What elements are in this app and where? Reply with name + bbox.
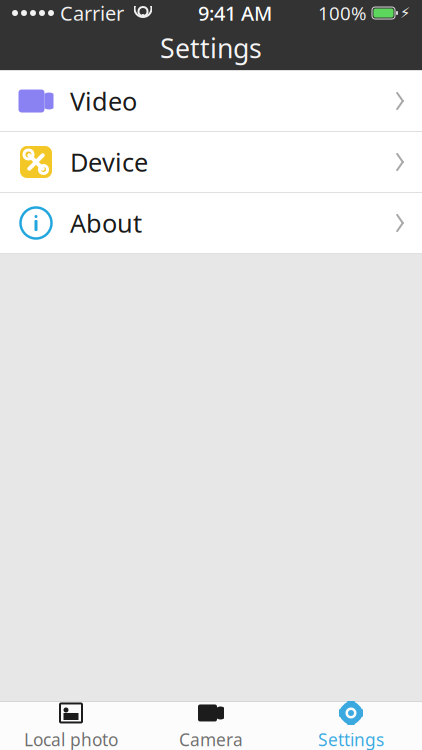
button[interactable]: About	[0, 193, 422, 253]
staticText: About	[70, 206, 142, 240]
button[interactable]: Settings	[281, 702, 421, 750]
staticText: ⚡︎	[400, 5, 410, 21]
staticText: Video	[70, 84, 137, 118]
staticText: Settings	[318, 728, 384, 750]
button[interactable]: Device	[0, 132, 422, 192]
staticText: Camera	[179, 728, 243, 750]
button[interactable]: Local photo	[1, 702, 141, 750]
staticText: Settings	[160, 30, 262, 66]
staticText: Local photo	[24, 728, 118, 750]
staticText: Device	[70, 145, 148, 179]
staticText: 100%	[318, 1, 367, 25]
button[interactable]: Camera	[141, 702, 281, 750]
staticText: 9:41 AM	[198, 0, 272, 26]
staticText: Carrier	[60, 0, 124, 26]
button[interactable]: Video	[0, 71, 422, 131]
